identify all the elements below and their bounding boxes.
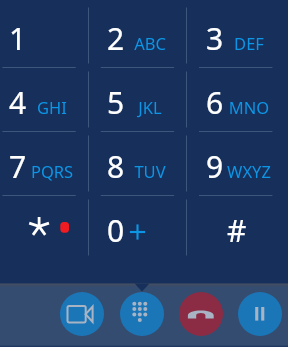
button[interactable]: 9	[197, 132, 288, 196]
staticText: WXYZ	[219, 160, 279, 182]
staticText: 8	[107, 146, 125, 187]
staticText: TUV	[120, 160, 180, 182]
staticText: 0	[107, 210, 125, 251]
staticText: GHI	[22, 96, 82, 118]
staticText: 2	[107, 18, 125, 59]
button[interactable]: 6	[197, 68, 288, 132]
staticText: 4	[9, 82, 27, 123]
button[interactable]: 4	[0, 68, 98, 132]
staticText: #	[227, 210, 247, 251]
staticText: 3	[206, 18, 224, 59]
staticText: 7	[9, 146, 27, 187]
button[interactable]: 5	[98, 68, 196, 132]
staticText: JKL	[120, 96, 180, 118]
button[interactable]: 7	[0, 132, 98, 196]
button[interactable]: Dialpad	[120, 292, 164, 336]
staticText: 6	[206, 82, 224, 123]
button[interactable]: #	[197, 196, 288, 260]
button[interactable]: Video call	[60, 292, 104, 336]
staticText: MNO	[219, 96, 279, 118]
button[interactable]: 3	[197, 4, 288, 68]
staticText: 9	[206, 146, 224, 187]
staticText: ABC	[120, 32, 180, 54]
button[interactable]: 1	[0, 4, 98, 68]
button[interactable]: 2	[98, 4, 196, 68]
button[interactable]: 8	[98, 132, 196, 196]
staticText: 5	[107, 82, 125, 123]
button[interactable]: 0	[98, 196, 196, 260]
staticText: PQRS	[22, 160, 82, 182]
button[interactable]	[0, 196, 98, 260]
staticText: 1	[9, 18, 27, 59]
staticText: DEF	[219, 32, 279, 54]
button[interactable]: Hold	[238, 292, 282, 336]
button[interactable]: End call	[179, 292, 223, 336]
